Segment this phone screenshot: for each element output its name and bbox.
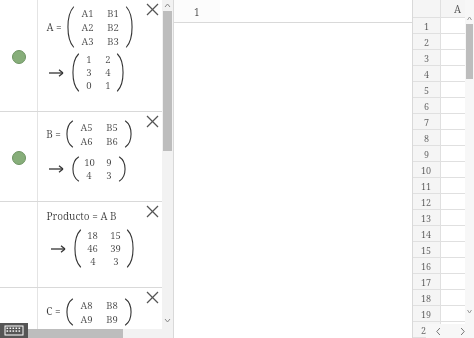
staticText: 1 xyxy=(86,53,92,66)
staticText: 3 xyxy=(86,66,92,79)
button[interactable]: Toggle visibility xyxy=(0,0,162,112)
staticText: A3 xyxy=(81,35,94,48)
staticText: 9 xyxy=(424,148,430,160)
button[interactable] xyxy=(441,226,474,241)
button[interactable]: 5 xyxy=(413,82,440,97)
staticText: 20 xyxy=(421,324,432,336)
staticText: A5 xyxy=(80,121,93,134)
button[interactable] xyxy=(441,98,474,113)
button[interactable] xyxy=(441,18,474,33)
staticText: 39 xyxy=(110,242,121,255)
button[interactable]: 16 xyxy=(413,258,440,273)
button[interactable] xyxy=(441,50,474,65)
button[interactable]: 1 xyxy=(174,0,220,23)
staticText: 2 xyxy=(424,36,430,48)
button[interactable] xyxy=(441,322,474,337)
staticText: A1 xyxy=(81,7,94,20)
staticText: 9 xyxy=(106,156,112,169)
button[interactable]: Close row xyxy=(144,1,160,17)
staticText: 5 xyxy=(424,84,430,96)
button[interactable]: Close row xyxy=(144,113,160,129)
staticText: B8 xyxy=(106,299,118,312)
button[interactable]: 17 xyxy=(413,274,440,289)
button[interactable]: 2 xyxy=(413,34,440,49)
button[interactable]: Toggle visibility xyxy=(11,49,26,64)
button[interactable] xyxy=(441,178,474,193)
button[interactable]: 18 xyxy=(413,290,440,305)
button[interactable]: 20 xyxy=(413,322,440,337)
button[interactable]: 1 xyxy=(413,18,440,33)
button[interactable] xyxy=(441,34,474,49)
button[interactable]: 10 xyxy=(413,162,440,177)
button[interactable]: 4 xyxy=(413,66,440,81)
staticText: 3 xyxy=(113,255,119,268)
button[interactable]: Toggle visibility xyxy=(0,112,162,202)
staticText: 6 xyxy=(424,100,430,112)
staticText: 0 xyxy=(86,79,92,92)
button[interactable]: 13 xyxy=(413,210,440,225)
staticText: 4 xyxy=(105,66,111,79)
button[interactable] xyxy=(441,274,474,289)
staticText: 14 xyxy=(421,228,432,240)
staticText: 18 xyxy=(421,292,432,304)
button[interactable]: 14 xyxy=(413,226,440,241)
staticText: 3 xyxy=(106,169,112,182)
button[interactable]: 3 xyxy=(413,50,440,65)
staticText: 7 xyxy=(424,116,430,128)
staticText: A2 xyxy=(81,21,94,34)
staticText: A9 xyxy=(80,313,93,326)
staticText: 4 xyxy=(86,169,92,182)
button[interactable]: 12 xyxy=(413,194,440,209)
button[interactable]: A xyxy=(441,0,474,17)
button[interactable] xyxy=(441,162,474,177)
staticText: A8 xyxy=(80,299,93,312)
button[interactable] xyxy=(441,194,474,209)
button[interactable] xyxy=(441,306,474,321)
button[interactable] xyxy=(441,242,474,257)
button[interactable]: Close row xyxy=(0,202,162,288)
staticText: A = xyxy=(46,20,62,34)
button[interactable] xyxy=(441,66,474,81)
button[interactable] xyxy=(441,146,474,161)
button[interactable] xyxy=(441,258,474,273)
staticText: B6 xyxy=(106,135,118,148)
button[interactable]: 11 xyxy=(413,178,440,193)
button[interactable]: 8 xyxy=(413,130,440,145)
button[interactable]: Scroll right xyxy=(450,324,474,338)
button[interactable] xyxy=(441,210,474,225)
button[interactable] xyxy=(441,130,474,145)
staticText: 10 xyxy=(84,156,95,169)
button[interactable]: 9 xyxy=(413,146,440,161)
button[interactable] xyxy=(441,290,474,305)
button[interactable]: 19 xyxy=(413,306,440,321)
button[interactable] xyxy=(441,82,474,97)
button[interactable]: Close row xyxy=(0,288,162,338)
staticText: 19 xyxy=(421,308,432,320)
staticText: 13 xyxy=(421,212,432,224)
staticText: 1 xyxy=(105,79,111,92)
button[interactable]: 6 xyxy=(413,98,440,113)
button[interactable]: 7 xyxy=(413,114,440,129)
staticText: 1 xyxy=(194,5,200,19)
button[interactable]: 15 xyxy=(413,242,440,257)
staticText: A6 xyxy=(80,135,93,148)
staticText: 3 xyxy=(424,52,430,64)
staticText: 10 xyxy=(421,164,432,176)
staticText: 11 xyxy=(421,180,432,192)
button[interactable] xyxy=(441,114,474,129)
button[interactable]: Toggle visibility xyxy=(11,150,26,165)
staticText: Producto = A B xyxy=(46,209,117,223)
staticText: B = xyxy=(46,127,61,141)
button[interactable]: Close row xyxy=(144,203,160,219)
button[interactable]: Close row xyxy=(144,289,160,305)
staticText: 16 xyxy=(421,260,432,272)
staticText: B5 xyxy=(106,121,118,134)
button[interactable]: Scroll left xyxy=(426,324,450,338)
staticText: 4 xyxy=(90,255,96,268)
staticText: B3 xyxy=(107,35,119,48)
button[interactable]: Show keyboard xyxy=(0,323,28,338)
